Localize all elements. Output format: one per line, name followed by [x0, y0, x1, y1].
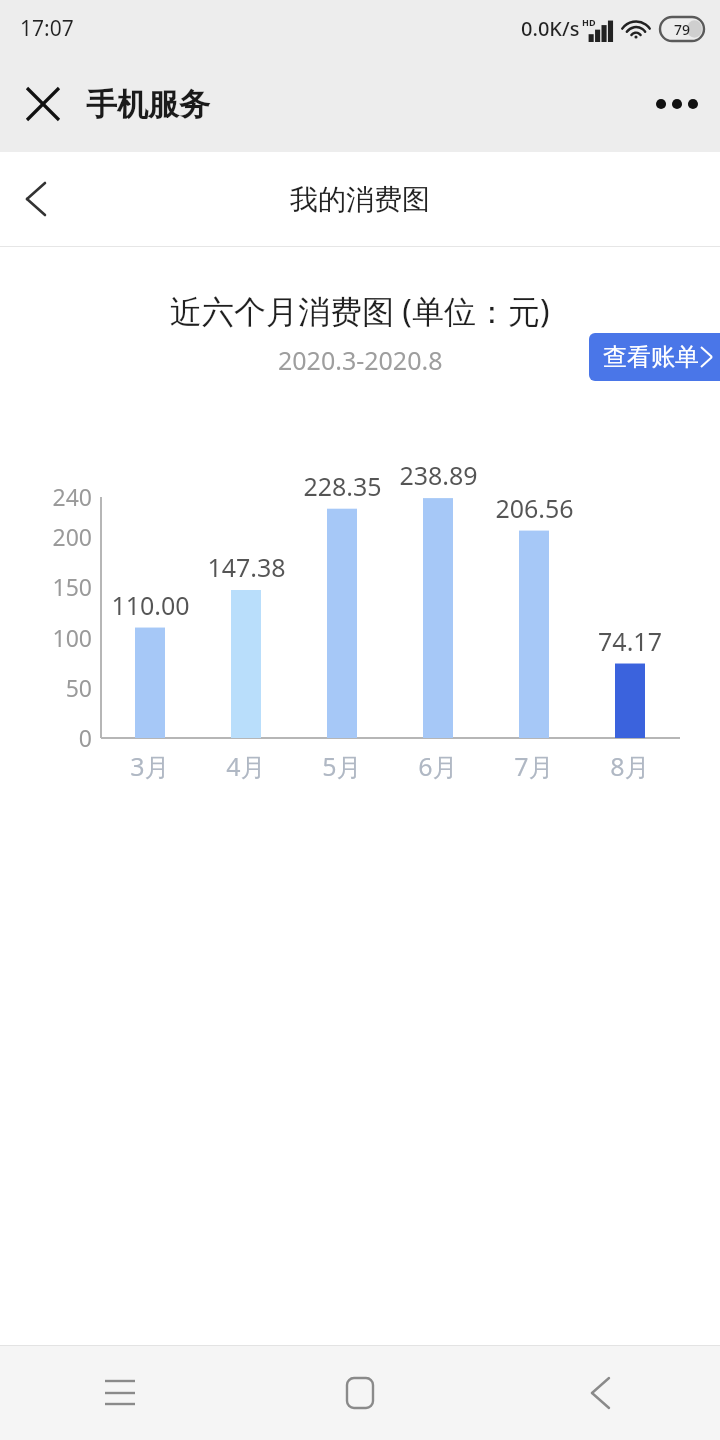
staticText: 0.0K/s — [521, 15, 580, 42]
button[interactable]: Recent apps — [0, 1346, 240, 1440]
staticText: 8月 — [610, 749, 650, 783]
staticText: 2020.3-2020.8 — [278, 343, 443, 377]
staticText: 我的消费图 — [290, 182, 430, 217]
button[interactable]: Back — [8, 171, 64, 227]
button[interactable]: More options — [648, 75, 706, 133]
staticText: 238.89 — [399, 458, 478, 492]
staticText: 150 — [52, 571, 92, 602]
staticText: 240 — [52, 481, 92, 512]
staticText: 79 — [674, 20, 691, 39]
staticText: 228.35 — [303, 469, 382, 503]
button[interactable]: 查看账单 — [589, 333, 720, 381]
staticText: 200 — [52, 521, 92, 552]
button[interactable]: Home — [240, 1346, 480, 1440]
button[interactable]: Close — [14, 75, 72, 133]
staticText: 4月 — [226, 749, 266, 783]
staticText: HD — [582, 16, 596, 28]
staticText: 查看账单 — [603, 342, 699, 372]
staticText: 147.38 — [207, 550, 286, 584]
staticText: 0 — [78, 722, 92, 753]
staticText: 74.17 — [598, 624, 662, 658]
staticText: 100 — [52, 622, 92, 653]
staticText: 17:07 — [20, 14, 74, 43]
staticText: 手机服务 — [86, 85, 210, 124]
staticText: 近六个月消费图 (单位：元) — [170, 289, 550, 333]
staticText: 50 — [65, 672, 92, 703]
staticText: 6月 — [418, 749, 458, 783]
button[interactable]: Back — [480, 1346, 720, 1440]
staticText: 5月 — [322, 749, 362, 783]
staticText: 7月 — [514, 749, 554, 783]
staticText: 206.56 — [495, 491, 574, 525]
staticText: 3月 — [130, 749, 170, 783]
staticText: 110.00 — [111, 588, 190, 622]
